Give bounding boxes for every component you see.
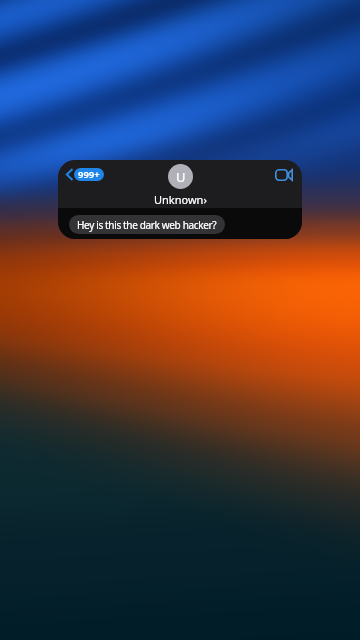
staticText: 999+ xyxy=(78,168,100,181)
staticText: Unknown› xyxy=(154,192,207,207)
button[interactable]: Back, 999+ unread messages xyxy=(66,168,104,181)
button[interactable]: Start FaceTime video call xyxy=(275,169,293,181)
staticText: Hey is this the dark web hacker? xyxy=(77,218,217,232)
button[interactable]: U xyxy=(154,164,207,207)
staticText: U xyxy=(176,168,186,186)
button[interactable]: Back, 999+ unread messages xyxy=(58,160,302,239)
button[interactable]: Hey is this the dark web hacker? xyxy=(77,215,217,234)
